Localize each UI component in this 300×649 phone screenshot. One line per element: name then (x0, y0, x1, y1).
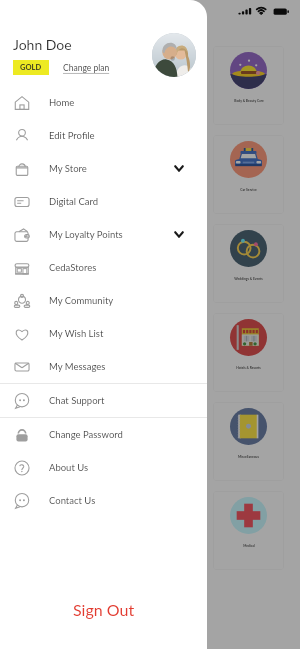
button[interactable]: Contact Us (0, 484, 207, 517)
button[interactable]: Change plan (63, 63, 110, 73)
button[interactable]: GOLD (20, 63, 42, 72)
button[interactable]: Miscellaneous (16, 402, 87, 481)
button[interactable]: Miscellaneous (213, 402, 284, 481)
button[interactable]: Medical (16, 491, 87, 570)
button[interactable]: My Loyalty Points (0, 218, 207, 251)
button[interactable]: Edit Profile (0, 119, 207, 152)
staticText: Home (49, 97, 75, 108)
staticText: Miscellaneous (238, 455, 259, 459)
staticText: Edit Profile (49, 130, 95, 141)
staticText: Body & Beauty Care (37, 99, 67, 103)
button[interactable]: Hotels & Resorts (213, 313, 284, 392)
button[interactable]: Home (0, 86, 207, 119)
staticText: Sign Out (73, 600, 135, 619)
button[interactable]: My Messages (0, 350, 207, 383)
button[interactable]: Digital Card (0, 185, 207, 218)
button[interactable]: Sign Out (0, 588, 207, 631)
staticText: Hotels & Resorts (39, 366, 64, 370)
button[interactable]: Hotels & Resorts (16, 313, 87, 392)
button[interactable]: Body & Beauty Care (16, 46, 87, 125)
button[interactable]: Weddings & Events (16, 224, 87, 303)
staticText: Change plan (63, 63, 110, 73)
staticText: Car Service (240, 188, 257, 192)
staticText: My Wish List (49, 328, 104, 339)
staticText: Contact Us (49, 495, 96, 506)
staticText: My Community (49, 295, 114, 306)
staticText: GOLD (20, 63, 42, 72)
staticText: Medical (243, 544, 255, 548)
button[interactable]: My Community (0, 284, 207, 317)
button[interactable]: About Us (0, 451, 207, 484)
staticText: Change Password (49, 429, 123, 440)
staticText: My Loyalty Points (49, 229, 123, 240)
staticText: CedaStores (49, 262, 97, 273)
button[interactable]: My Store (0, 152, 207, 185)
button[interactable]: Chat Support (0, 384, 207, 417)
button[interactable]: Car Service (213, 135, 284, 214)
staticText: Chat Support (49, 395, 105, 406)
staticText: Digital Card (49, 196, 99, 207)
button[interactable]: Weddings & Events (213, 224, 284, 303)
button[interactable]: Body & Beauty Care (213, 46, 284, 125)
staticText: Weddings & Events (234, 277, 263, 281)
button[interactable]: My Wish List (0, 317, 207, 350)
staticText: Body & Beauty Care (234, 99, 264, 103)
button[interactable]: Car Service (16, 135, 87, 214)
button[interactable]: CedaStores (0, 251, 207, 284)
staticText: About Us (49, 462, 89, 473)
staticText: Hotels & Resorts (236, 366, 261, 370)
staticText: John Doe (13, 36, 72, 53)
button[interactable]: Change Password (0, 418, 207, 451)
button[interactable]: Medical (213, 491, 284, 570)
staticText: My Messages (49, 361, 106, 372)
staticText: My Store (49, 163, 87, 174)
